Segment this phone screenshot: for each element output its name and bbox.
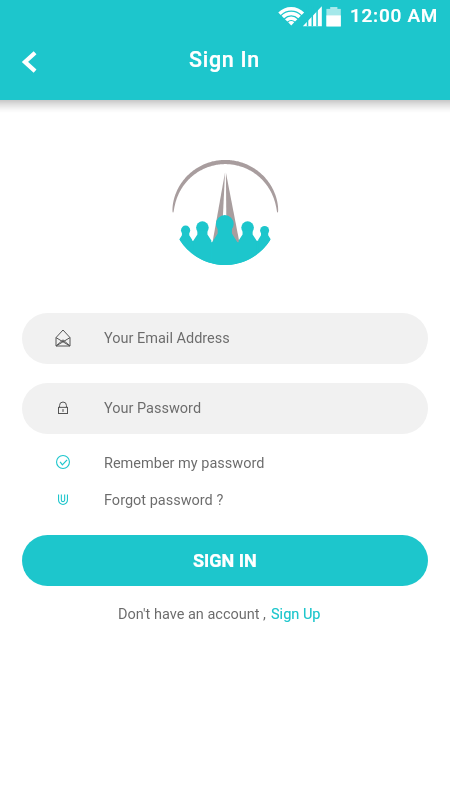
button[interactable]: SIGN IN — [22, 535, 428, 586]
staticText: Your Password — [104, 400, 202, 417]
staticText: Don't have an account , — [118, 606, 266, 623]
staticText: Sign In — [189, 47, 260, 72]
button[interactable]: Sign Up — [266, 606, 321, 623]
button[interactable]: Your Password — [22, 383, 428, 434]
staticText: Forgot password ? — [104, 492, 224, 509]
staticText: Your Email Address — [104, 330, 230, 347]
button[interactable]: Remember my password — [22, 448, 428, 478]
button[interactable]: Forgot password ? — [22, 485, 428, 515]
staticText: Remember my password — [104, 455, 265, 472]
staticText: 12:00 AM — [350, 4, 439, 26]
staticText: Sign Up — [271, 606, 321, 623]
staticText: SIGN IN — [193, 550, 257, 571]
button[interactable]: Back — [9, 42, 49, 82]
button[interactable]: Your Email Address — [22, 313, 428, 364]
